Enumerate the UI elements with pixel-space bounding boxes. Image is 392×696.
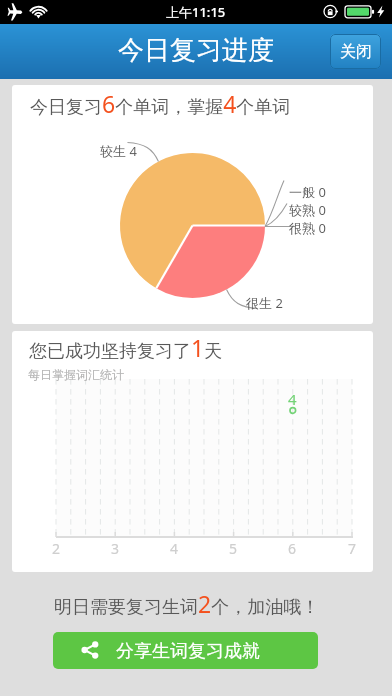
- staticText: 上午11:15: [166, 3, 226, 21]
- staticText: 6: [288, 539, 297, 558]
- staticText: 很熟 0: [289, 219, 326, 237]
- staticText: 关闭: [340, 42, 372, 62]
- staticText: 5: [229, 539, 238, 558]
- button[interactable]: 关闭: [330, 34, 381, 69]
- staticText: 7: [348, 539, 357, 558]
- staticText: 较熟 0: [289, 201, 326, 219]
- staticText: 明日需要复习生词2个，加油哦！: [54, 588, 320, 619]
- staticText: 每日掌握词汇统计: [28, 367, 124, 382]
- staticText: 今日复习6个单词，掌握4个单词: [30, 88, 291, 119]
- staticText: 4: [170, 539, 179, 558]
- staticText: 分享生词复习成就: [116, 640, 260, 663]
- button[interactable]: 分享生词复习成就: [53, 632, 318, 669]
- staticText: 很生 2: [246, 294, 283, 312]
- staticText: 今日复习进度: [118, 34, 274, 67]
- staticText: 一般 0: [289, 183, 326, 201]
- staticText: 2: [52, 539, 61, 558]
- staticText: 4: [288, 389, 297, 409]
- staticText: 您已成功坚持复习了1天: [29, 332, 223, 363]
- staticText: 较生 4: [100, 142, 137, 160]
- staticText: 3: [111, 539, 120, 558]
